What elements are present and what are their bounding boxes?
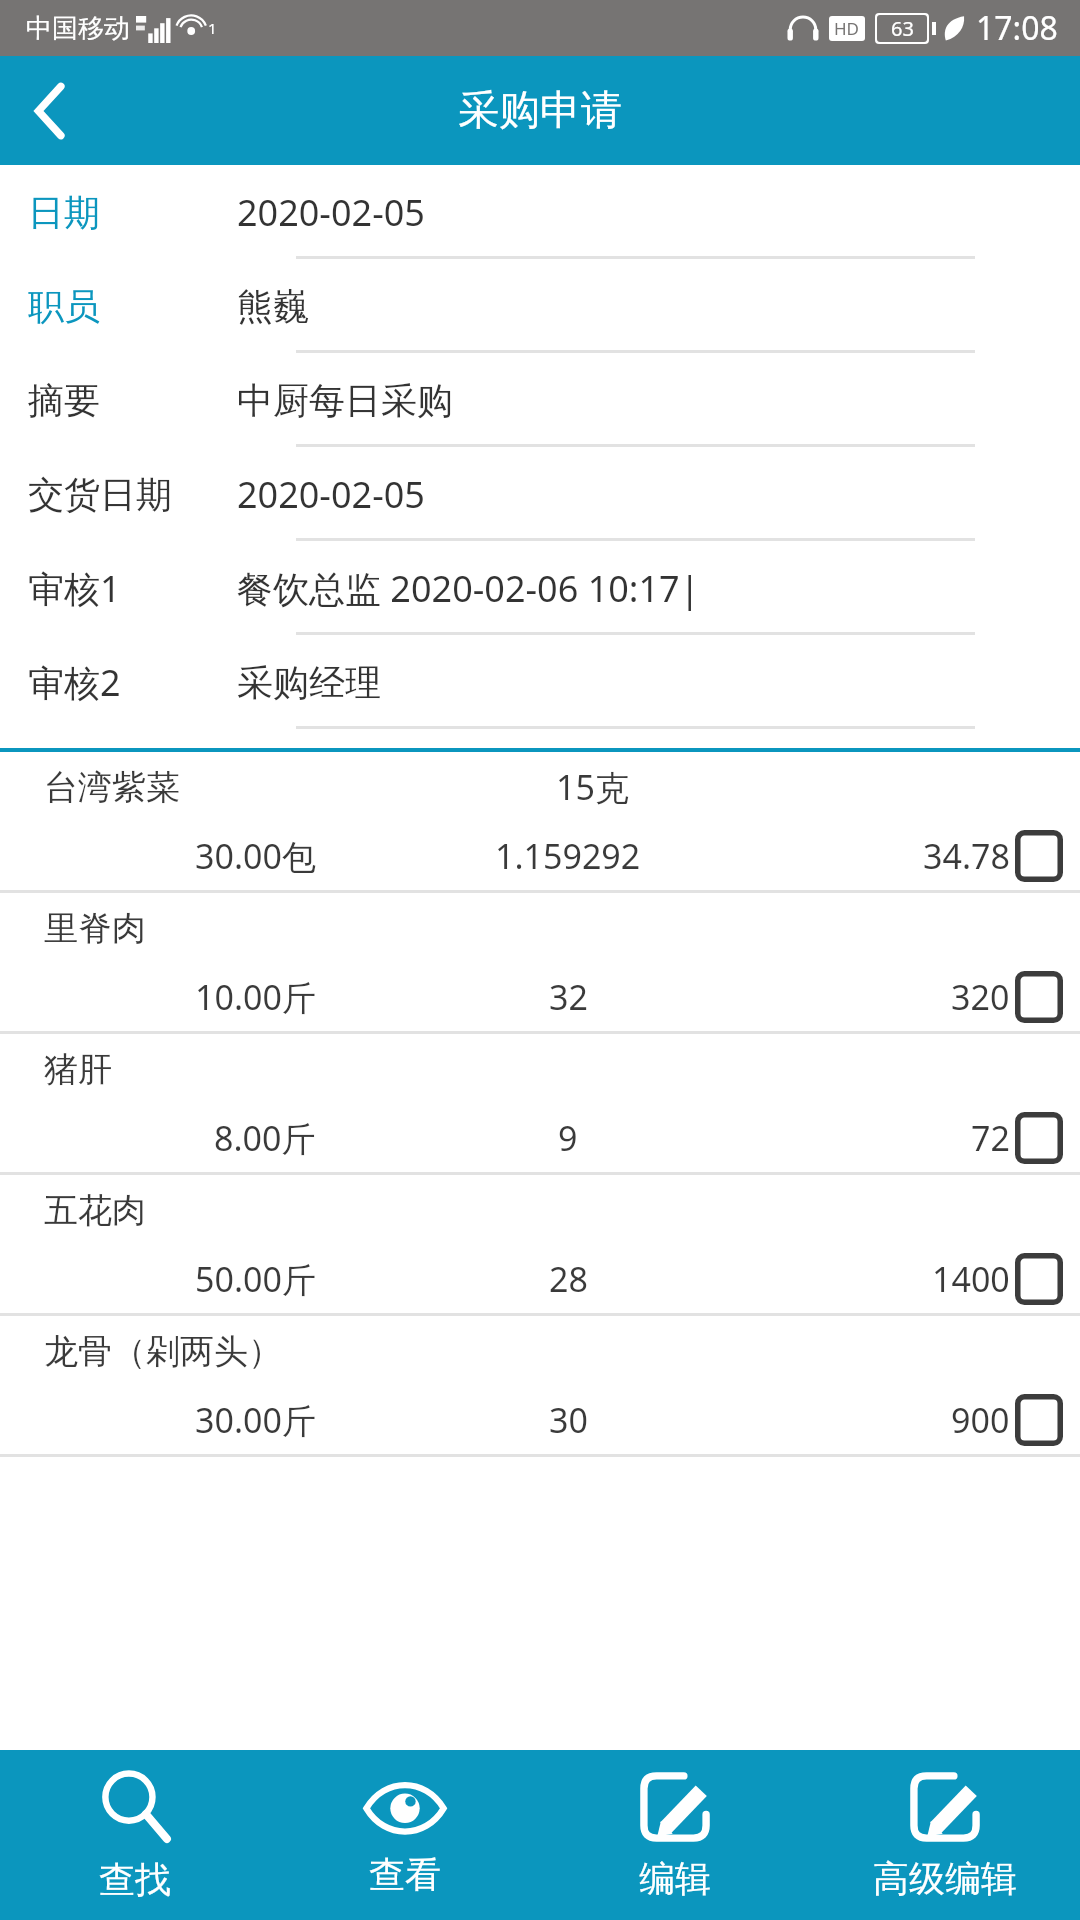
staticText: 63 bbox=[891, 15, 914, 42]
button[interactable]: 返回 bbox=[0, 56, 100, 165]
button[interactable]: 查找 bbox=[0, 1750, 270, 1920]
other: 查找 bbox=[97, 1769, 173, 1845]
staticText: 职员 bbox=[28, 284, 100, 329]
staticText: 编辑 bbox=[639, 1856, 711, 1901]
button[interactable]: 摘要 bbox=[0, 353, 1080, 447]
staticText: 龙骨（剁两头） bbox=[44, 1330, 282, 1373]
staticText: 五花肉 bbox=[44, 1189, 146, 1232]
staticText: 审核2 bbox=[28, 658, 121, 707]
other: 查看 bbox=[363, 1774, 447, 1840]
button[interactable]: 里脊肉 bbox=[0, 893, 1080, 1034]
staticText: 2020-02-05 bbox=[237, 188, 425, 237]
staticText: 34.78 bbox=[923, 833, 1010, 879]
staticText: 72 bbox=[971, 1115, 1010, 1161]
staticText: 日期 bbox=[28, 190, 100, 235]
staticText: 1.159292 bbox=[495, 833, 641, 879]
staticText: 查看 bbox=[369, 1852, 441, 1897]
button[interactable]: 选择 bbox=[1010, 1391, 1068, 1449]
button[interactable]: 查看 bbox=[270, 1750, 540, 1920]
button[interactable]: 编辑 bbox=[540, 1750, 810, 1920]
staticText: 餐饮总监 2020-02-06 10:17| bbox=[237, 564, 700, 613]
other: 编辑 bbox=[638, 1770, 712, 1844]
staticText: 8.00斤 bbox=[214, 1115, 316, 1161]
staticText: 高级编辑 bbox=[873, 1856, 1017, 1901]
staticText: 900 bbox=[951, 1397, 1010, 1443]
staticText: 交货日期 bbox=[28, 472, 172, 517]
staticText: 熊巍 bbox=[237, 284, 309, 329]
button[interactable]: 五花肉 bbox=[0, 1175, 1080, 1316]
button[interactable]: 审核1 bbox=[0, 541, 1080, 635]
staticText: 9 bbox=[558, 1115, 578, 1161]
staticText: 50.00斤 bbox=[195, 1256, 316, 1302]
staticText: 15克 bbox=[556, 764, 629, 810]
staticText: 28 bbox=[549, 1256, 588, 1302]
staticText: HD bbox=[834, 17, 860, 40]
button[interactable]: 选择 bbox=[1010, 1109, 1068, 1167]
button[interactable]: 交货日期 bbox=[0, 447, 1080, 541]
staticText: 台湾紫菜 bbox=[44, 766, 180, 809]
staticText: 采购经理 bbox=[237, 660, 381, 705]
staticText: 中厨每日采购 bbox=[237, 378, 453, 423]
staticText: 30.00斤 bbox=[195, 1397, 316, 1443]
button[interactable]: 台湾紫菜 bbox=[0, 752, 1080, 893]
staticText: 320 bbox=[951, 974, 1010, 1020]
staticText: 猪肝 bbox=[44, 1048, 112, 1091]
button[interactable]: 龙骨（剁两头） bbox=[0, 1316, 1080, 1457]
button[interactable]: 选择 bbox=[1010, 1250, 1068, 1308]
button[interactable]: 日期 bbox=[0, 165, 1080, 259]
staticText: 查找 bbox=[99, 1857, 171, 1902]
staticText: 17:08 bbox=[976, 6, 1058, 50]
staticText: 32 bbox=[549, 974, 588, 1020]
button[interactable]: 审核2 bbox=[0, 635, 1080, 729]
button[interactable]: 职员 bbox=[0, 259, 1080, 353]
staticText: 采购申请 bbox=[458, 85, 622, 137]
staticText: 30 bbox=[549, 1397, 588, 1443]
button[interactable]: 选择 bbox=[1010, 968, 1068, 1026]
staticText: 审核1 bbox=[28, 564, 121, 613]
button[interactable]: 猪肝 bbox=[0, 1034, 1080, 1175]
button[interactable]: 选择 bbox=[1010, 827, 1068, 885]
button[interactable]: 高级编辑 bbox=[810, 1750, 1080, 1920]
staticText: 中国移动 bbox=[26, 12, 130, 45]
staticText: 里脊肉 bbox=[44, 907, 146, 950]
other: 高级编辑 bbox=[908, 1770, 982, 1844]
staticText: 1 bbox=[208, 18, 217, 38]
staticText: 摘要 bbox=[28, 378, 100, 423]
staticText: 30.00包 bbox=[195, 833, 316, 879]
staticText: 2020-02-05 bbox=[237, 470, 425, 519]
staticText: 1400 bbox=[932, 1256, 1010, 1302]
staticText: 10.00斤 bbox=[195, 974, 316, 1020]
